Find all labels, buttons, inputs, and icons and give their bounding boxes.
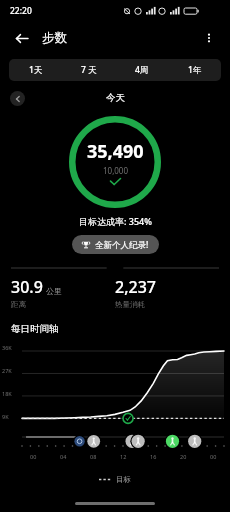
button[interactable]: 1天 (9, 59, 62, 81)
staticText: 距离 (11, 300, 26, 309)
staticText: 目标 (116, 475, 131, 484)
button[interactable]: Back (10, 27, 32, 49)
button[interactable]: 4周 (115, 59, 168, 81)
staticText: 4周 (135, 64, 149, 76)
staticText: 08 (90, 453, 97, 460)
staticText: 20 (180, 453, 187, 460)
staticText: 00 (210, 453, 217, 460)
staticText: 7 天 (81, 64, 97, 76)
staticText: 全新个人纪录! (95, 239, 149, 251)
staticText: 1天 (29, 64, 43, 76)
staticText: 27K (2, 367, 12, 374)
staticText: 18K (2, 390, 12, 397)
staticText: 每日时间轴 (11, 323, 59, 335)
staticText: 公里 (46, 286, 62, 296)
staticText: 10,000 (103, 165, 129, 176)
staticText: 9K (2, 413, 9, 420)
staticText: 2,237 (115, 276, 156, 298)
staticText: 步数 (42, 30, 67, 46)
staticText: 热量消耗 (115, 300, 145, 309)
button[interactable]: Previous day (10, 91, 25, 106)
button[interactable]: 7 天 (62, 59, 115, 81)
staticText: 1年 (188, 64, 202, 76)
staticText: 04 (60, 453, 67, 460)
staticText: 00 (30, 453, 37, 460)
button[interactable]: 1年 (168, 59, 221, 81)
staticText: 今天 (106, 92, 125, 104)
staticText: 35,490 (87, 139, 144, 164)
staticText: 12 (120, 453, 127, 460)
staticText: 22:20 (10, 5, 32, 17)
staticText: 目标达成率: 354% (79, 215, 152, 227)
staticText: 16 (150, 453, 157, 460)
staticText: 36K (2, 344, 12, 351)
button[interactable]: More options (198, 27, 220, 49)
button[interactable]: 全新个人纪录! (72, 235, 159, 254)
staticText: 30.9 (11, 276, 43, 298)
